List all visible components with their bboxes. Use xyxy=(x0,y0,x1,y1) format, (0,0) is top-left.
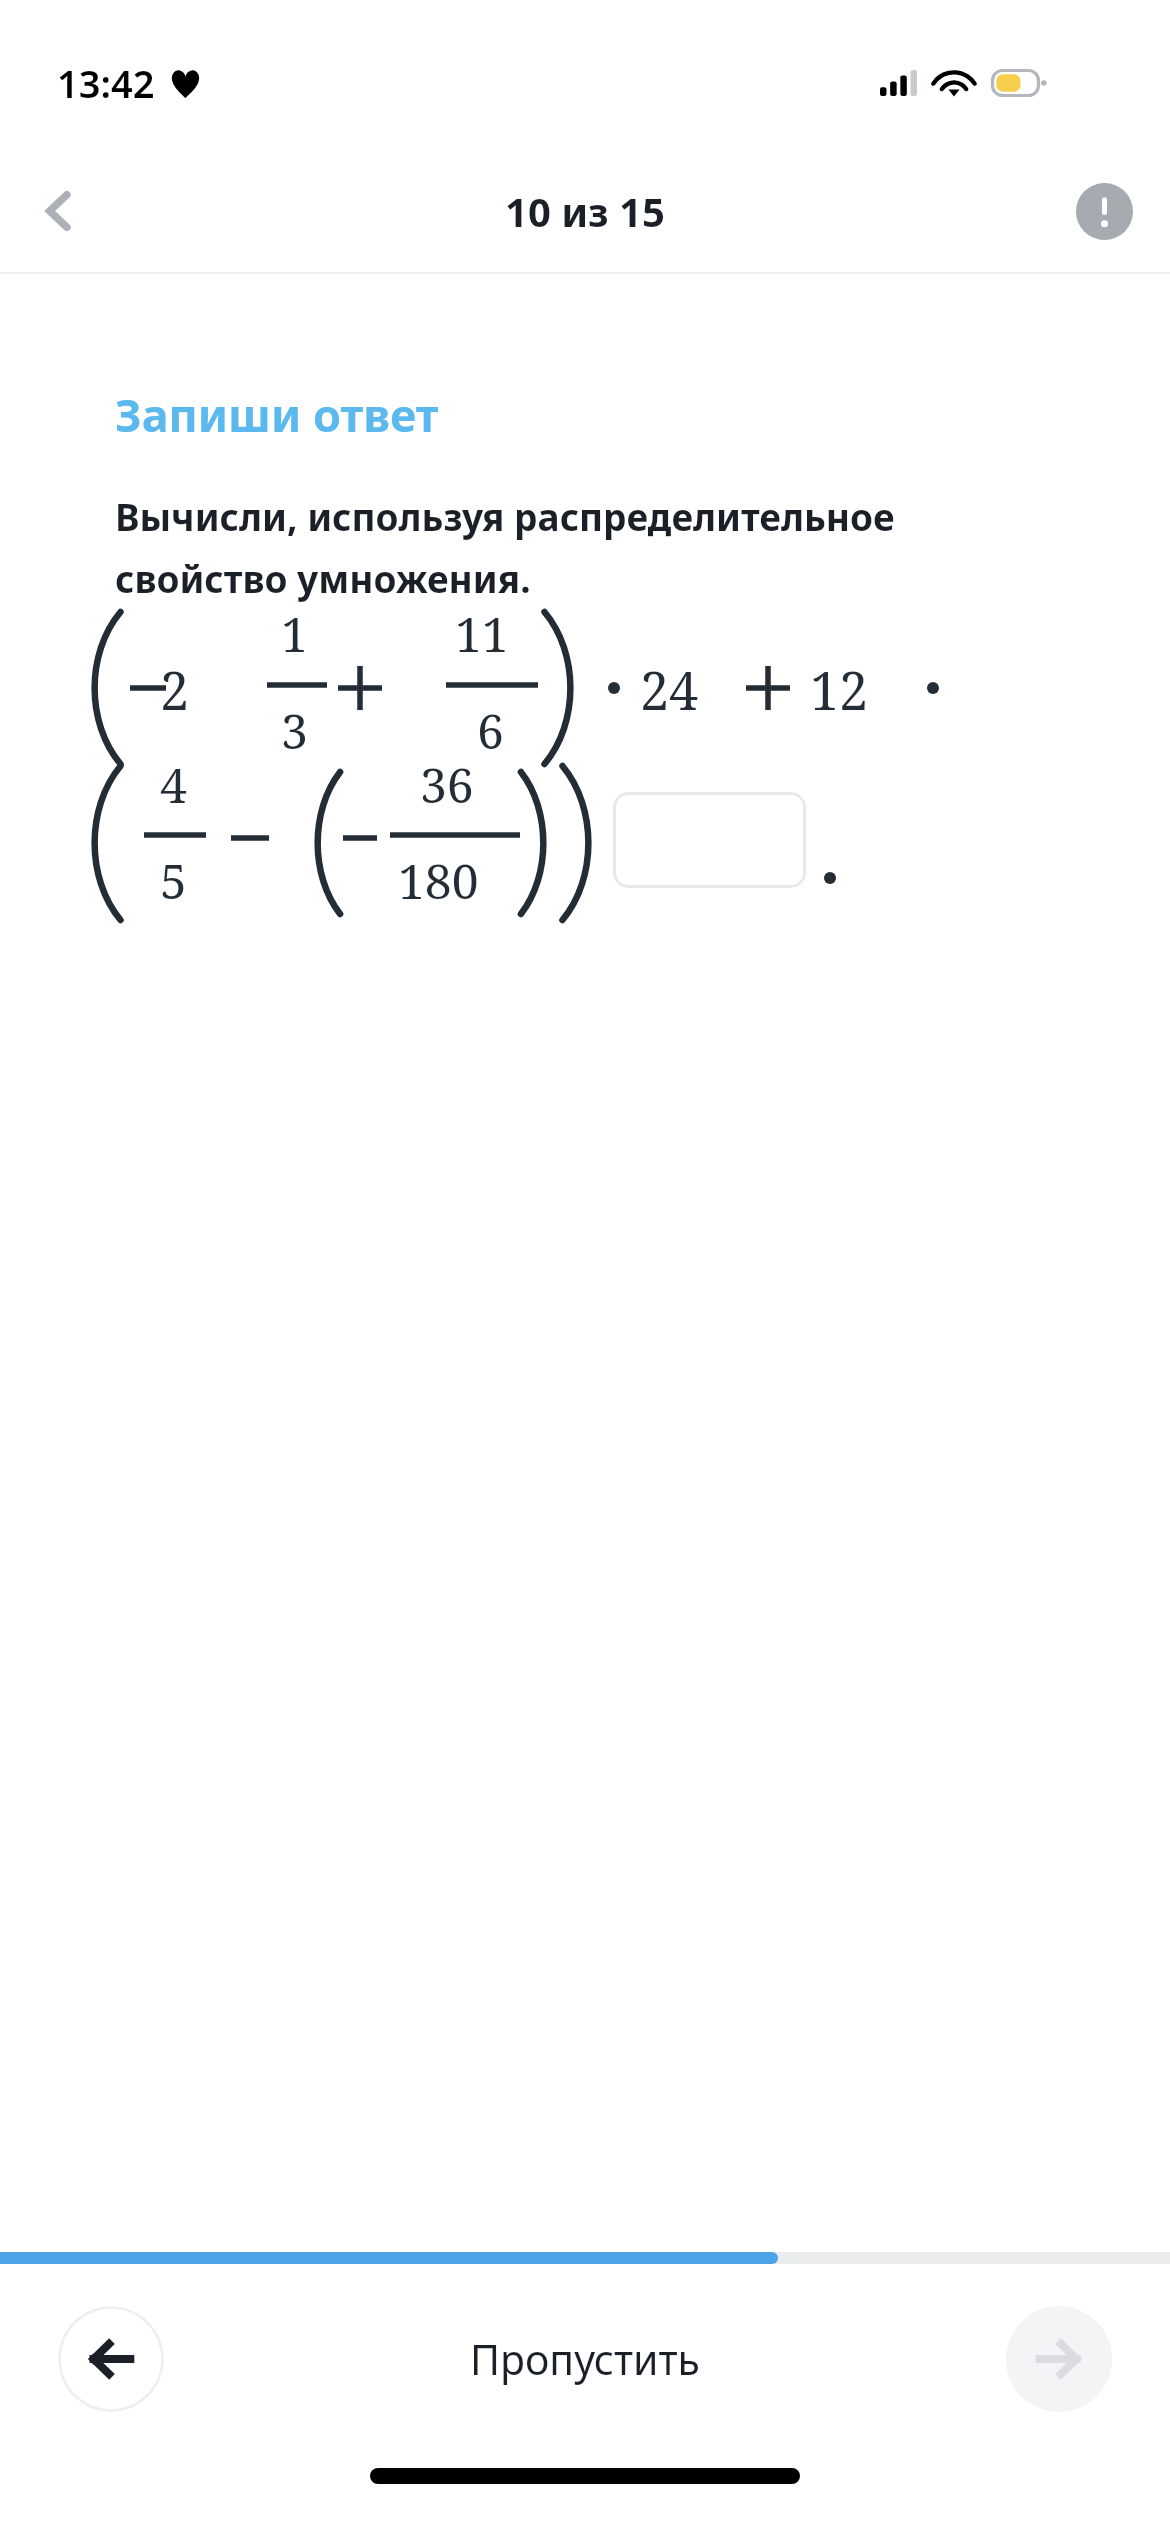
staticText: 1 xyxy=(281,601,308,666)
staticText: 5 xyxy=(160,848,187,913)
button[interactable]: Пропустить xyxy=(450,2319,720,2399)
button[interactable]: Information xyxy=(1070,177,1138,245)
staticText: 24 xyxy=(640,654,699,725)
staticText: 36 xyxy=(420,752,474,817)
staticText: 13:42 xyxy=(57,57,155,109)
button[interactable]: Previous xyxy=(58,2306,164,2412)
staticText: Вычисли, используя распределительное сво… xyxy=(115,491,1075,604)
staticText: 12 xyxy=(810,654,869,725)
staticText: Запиши ответ xyxy=(115,384,439,445)
staticText: Пропустить xyxy=(470,2331,700,2387)
staticText: 3 xyxy=(281,698,308,763)
button[interactable]: Next xyxy=(1006,2306,1112,2412)
staticText: 2 xyxy=(160,654,190,725)
staticText: 11 xyxy=(455,601,509,666)
button[interactable]: Answer field xyxy=(613,792,806,888)
staticText: 180 xyxy=(398,848,479,913)
staticText: 4 xyxy=(160,752,187,817)
staticText: 10 из 15 xyxy=(505,184,665,238)
staticText: 6 xyxy=(477,698,504,763)
button[interactable]: Back xyxy=(16,168,102,254)
